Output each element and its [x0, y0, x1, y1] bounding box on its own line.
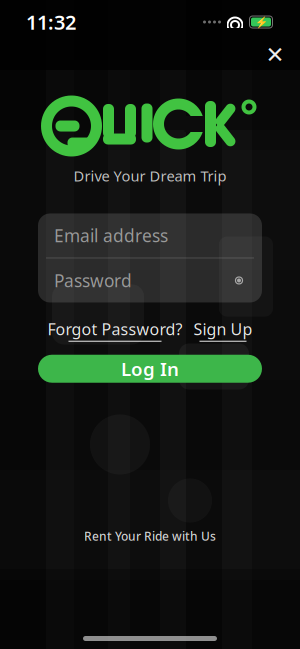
- staticText: ✕: [265, 42, 284, 68]
- staticText: Log In: [121, 356, 179, 381]
- button[interactable]: Show password: [38, 258, 262, 302]
- staticText: Sign Up: [193, 318, 252, 340]
- button[interactable]: Forgot Password?: [47, 318, 182, 342]
- staticText: Password: [54, 269, 132, 292]
- staticText: ⚡: [254, 16, 267, 28]
- button[interactable]: Email address: [38, 213, 262, 257]
- staticText: 11:32: [26, 9, 76, 35]
- staticText: Forgot Password?: [47, 318, 182, 340]
- button[interactable]: Log In: [38, 355, 262, 383]
- staticText: Email address: [54, 224, 168, 247]
- staticText: Rent Your Ride with Us: [84, 528, 216, 544]
- button[interactable]: Close: [258, 38, 292, 72]
- button[interactable]: Sign Up: [193, 318, 252, 342]
- staticText: Drive Your Dream Trip: [73, 166, 226, 185]
